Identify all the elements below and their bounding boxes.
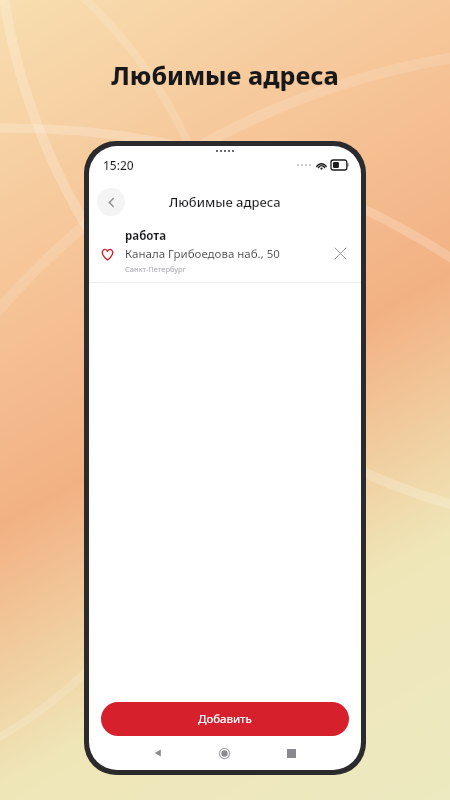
- staticText: Любимые адреса: [111, 58, 339, 92]
- staticText: Канала Грибоедова наб., 50: [125, 246, 280, 262]
- button[interactable]: Добавить: [101, 702, 349, 736]
- button[interactable]: Back: [125, 736, 191, 770]
- staticText: работа: [125, 228, 167, 244]
- button[interactable]: Home: [191, 736, 258, 770]
- button[interactable]: работа: [89, 224, 361, 282]
- staticText: Добавить: [198, 711, 252, 727]
- button[interactable]: Back: [97, 188, 125, 216]
- staticText: Санкт-Петербург: [125, 264, 186, 274]
- button[interactable]: Remove address: [329, 242, 351, 264]
- staticText: 15:20: [103, 157, 134, 173]
- staticText: Любимые адреса: [169, 193, 281, 211]
- button[interactable]: Recent apps: [258, 736, 325, 770]
